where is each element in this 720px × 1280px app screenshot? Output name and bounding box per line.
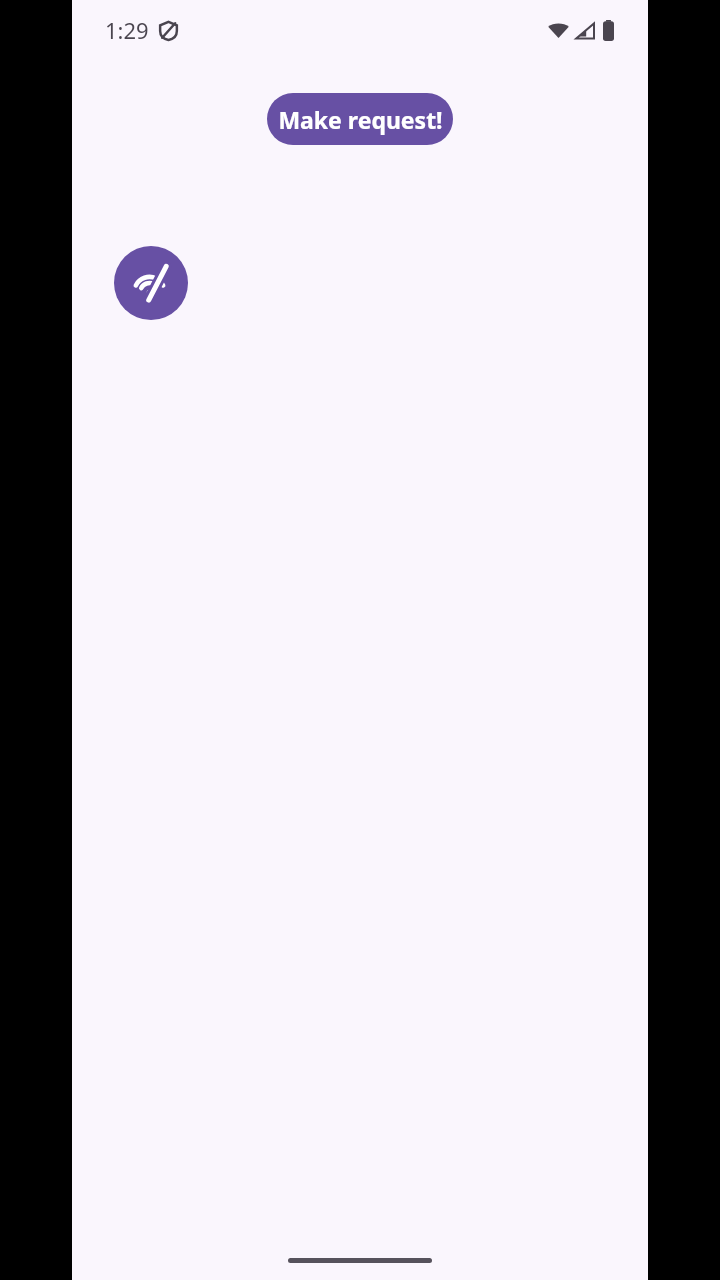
button[interactable]: Network status	[114, 246, 188, 320]
button[interactable]: Make request!	[267, 93, 453, 145]
staticText: Make request!	[278, 104, 443, 135]
staticText: 1:29	[105, 15, 149, 45]
